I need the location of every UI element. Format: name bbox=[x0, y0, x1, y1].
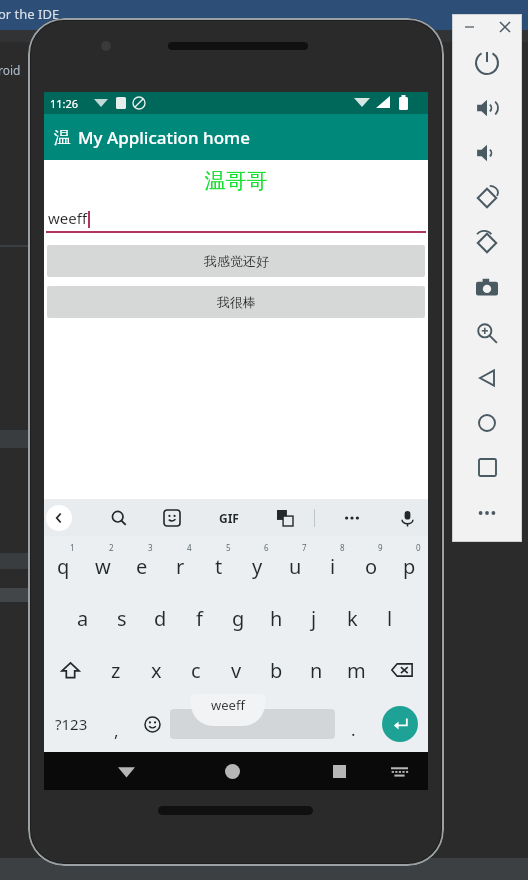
staticText: d bbox=[154, 605, 167, 632]
button[interactable]: Power bbox=[452, 40, 522, 85]
staticText: weeff bbox=[211, 696, 245, 714]
button[interactable]: Volume down bbox=[452, 130, 522, 175]
staticText: 1 bbox=[70, 542, 75, 553]
button[interactable]: Stickers bbox=[157, 503, 187, 533]
staticText: n bbox=[310, 657, 323, 684]
button[interactable]: Enter bbox=[382, 706, 418, 742]
staticText: roid bbox=[0, 62, 21, 78]
button[interactable]: 8 bbox=[314, 540, 352, 592]
button[interactable]: Home bbox=[452, 400, 522, 445]
button[interactable]: n bbox=[296, 644, 336, 696]
button[interactable]: 0 bbox=[390, 540, 428, 592]
staticText: ?123 bbox=[55, 714, 88, 734]
button[interactable]: d bbox=[141, 592, 180, 644]
button[interactable]: Rotate left bbox=[452, 175, 522, 220]
staticText: 6 bbox=[264, 542, 269, 553]
staticText: 11:26 bbox=[50, 96, 79, 111]
staticText: r bbox=[176, 553, 185, 580]
staticText: 8 bbox=[340, 542, 345, 553]
button[interactable]: 2 bbox=[83, 540, 122, 592]
button[interactable]: j bbox=[295, 592, 333, 644]
staticText: . bbox=[351, 718, 356, 741]
button[interactable]: . bbox=[335, 696, 371, 752]
staticText: 5 bbox=[226, 542, 231, 553]
button[interactable]: , bbox=[98, 696, 134, 752]
button[interactable]: More options bbox=[336, 502, 368, 534]
button[interactable]: Zoom bbox=[452, 310, 522, 355]
staticText: 4 bbox=[187, 542, 192, 553]
button[interactable]: Translate bbox=[270, 503, 300, 533]
button[interactable]: Rotate right bbox=[452, 220, 522, 265]
button[interactable]: k bbox=[333, 592, 371, 644]
staticText: m bbox=[347, 657, 366, 684]
button[interactable]: Shift bbox=[44, 644, 96, 696]
staticText: w bbox=[95, 553, 111, 580]
staticText: a bbox=[77, 605, 89, 632]
button[interactable]: x bbox=[136, 644, 176, 696]
button[interactable]: 5 bbox=[200, 540, 238, 592]
button[interactable]: Back bbox=[46, 505, 72, 531]
button[interactable]: s bbox=[102, 592, 141, 644]
button[interactable]: z bbox=[96, 644, 136, 696]
button[interactable]: Close bbox=[487, 14, 522, 40]
staticText: k bbox=[347, 605, 358, 632]
staticText: GIF bbox=[219, 510, 239, 526]
staticText: j bbox=[311, 605, 317, 632]
button[interactable]: Space bbox=[170, 709, 335, 739]
button[interactable]: Search bbox=[104, 503, 134, 533]
button[interactable]: Screenshot bbox=[452, 265, 522, 310]
staticText: q bbox=[57, 553, 70, 580]
staticText: f bbox=[196, 605, 203, 632]
button[interactable]: GIF bbox=[212, 501, 246, 535]
button[interactable]: m bbox=[336, 644, 376, 696]
button[interactable]: f bbox=[180, 592, 219, 644]
staticText: 3 bbox=[148, 542, 153, 553]
button[interactable]: l bbox=[371, 592, 409, 644]
staticText: 9 bbox=[378, 542, 383, 553]
staticText: g bbox=[232, 605, 245, 632]
button[interactable]: c bbox=[176, 644, 216, 696]
button[interactable]: 7 bbox=[276, 540, 314, 592]
staticText: x bbox=[151, 657, 162, 684]
staticText: l bbox=[387, 605, 393, 632]
button[interactable]: Voice input bbox=[392, 503, 422, 533]
button[interactable]: h bbox=[257, 592, 295, 644]
staticText: 温 bbox=[54, 127, 71, 148]
button[interactable]: Minimize bbox=[452, 14, 487, 40]
staticText: 我很棒 bbox=[217, 294, 256, 310]
staticText: 我感觉还好 bbox=[204, 253, 269, 269]
staticText: o bbox=[365, 553, 378, 580]
staticText: p bbox=[403, 553, 416, 580]
button[interactable]: Overview bbox=[452, 445, 522, 490]
button[interactable]: 6 bbox=[238, 540, 276, 592]
button[interactable]: Back bbox=[452, 355, 522, 400]
button[interactable]: More bbox=[452, 490, 522, 535]
button[interactable]: 我很棒 bbox=[47, 286, 425, 318]
button[interactable]: 3 bbox=[122, 540, 161, 592]
staticText: 7 bbox=[302, 542, 307, 553]
button[interactable]: Backspace bbox=[376, 644, 428, 696]
staticText: h bbox=[270, 605, 283, 632]
staticText: b bbox=[270, 657, 283, 684]
button[interactable]: v bbox=[216, 644, 256, 696]
button[interactable]: 我感觉还好 bbox=[47, 245, 425, 277]
button[interactable]: Emoji bbox=[134, 696, 170, 752]
button[interactable]: Recents bbox=[322, 754, 356, 788]
button[interactable]: ?123 bbox=[44, 696, 98, 752]
staticText: 温哥哥 bbox=[44, 168, 428, 194]
button[interactable]: Volume up bbox=[452, 85, 522, 130]
staticText: 0 bbox=[416, 542, 421, 553]
staticText: e bbox=[136, 553, 148, 580]
button[interactable]: 1 bbox=[44, 540, 83, 592]
button[interactable]: 9 bbox=[352, 540, 390, 592]
button[interactable]: a bbox=[63, 592, 102, 644]
staticText: My Application home bbox=[78, 126, 250, 149]
button[interactable]: b bbox=[256, 644, 296, 696]
button[interactable]: g bbox=[219, 592, 257, 644]
button[interactable]: Switch keyboard bbox=[382, 754, 416, 788]
button[interactable]: Home bbox=[215, 754, 249, 788]
button[interactable]: 4 bbox=[161, 540, 200, 592]
staticText: weeff bbox=[48, 208, 88, 228]
button[interactable]: Back bbox=[109, 754, 143, 788]
staticText: z bbox=[111, 657, 121, 684]
